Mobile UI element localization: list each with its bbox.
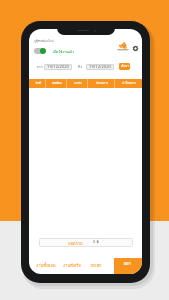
button[interactable]: คนขับ	[67, 79, 88, 88]
button[interactable]: ทะเบียน	[46, 79, 67, 88]
staticText: งานที่เสร็จ	[63, 262, 81, 268]
button[interactable]: วันที่	[29, 79, 46, 88]
staticText: 19/12/2020	[89, 64, 111, 70]
button[interactable]: ยอดรวม	[39, 238, 133, 247]
staticText: ดูผู้ขับขี่ออนไลน์	[34, 39, 54, 43]
staticText: วันที่	[35, 81, 41, 86]
staticText: ถึง	[78, 64, 82, 70]
button[interactable]: Settings	[132, 45, 139, 52]
button[interactable]: 19/12/2020	[86, 64, 114, 70]
staticText: ค่าโดยสาร	[122, 81, 136, 86]
button[interactable]: ออก	[114, 258, 142, 274]
staticText: ยอดรวม	[68, 240, 83, 246]
other: App logo	[116, 40, 130, 52]
staticText: งานทั้งหมด	[36, 262, 56, 268]
staticText: ค้นหา	[121, 64, 129, 69]
staticText: เปิดใช้งานแล้ว	[53, 49, 74, 54]
staticText: จาก	[36, 64, 43, 70]
button[interactable]: 19/12/2020	[44, 64, 72, 70]
staticText: 19/12/2020	[47, 64, 69, 70]
button[interactable]: ปลายทาง	[88, 79, 115, 88]
staticText: ออก	[123, 260, 131, 266]
staticText: ปลายทาง	[96, 81, 108, 86]
button[interactable]: งานทั้งหมด	[36, 262, 56, 268]
button[interactable]	[34, 48, 46, 54]
button[interactable]: งานที่เสร็จ	[63, 262, 81, 268]
staticText: 0 ฿	[93, 239, 99, 244]
staticText: คนขับ	[74, 81, 82, 86]
button[interactable]: ค้นหา	[119, 63, 130, 70]
staticText: ยกเลิก	[90, 262, 102, 268]
button[interactable]: ยกเลิก	[90, 262, 102, 268]
button[interactable]: ค่าโดยสาร	[115, 79, 142, 88]
staticText: ทะเบียน	[52, 81, 62, 86]
